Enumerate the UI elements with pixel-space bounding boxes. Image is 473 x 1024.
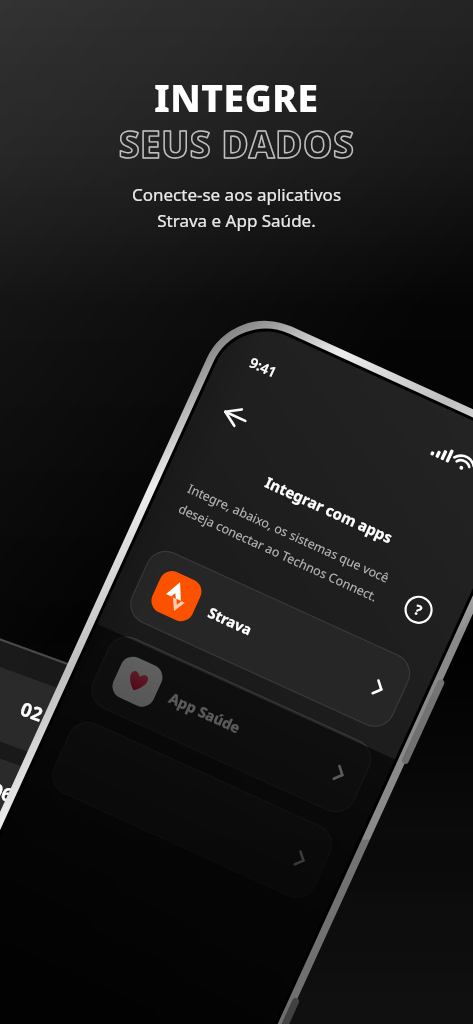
other: Integre seus dados promo (0, 0, 473, 1024)
